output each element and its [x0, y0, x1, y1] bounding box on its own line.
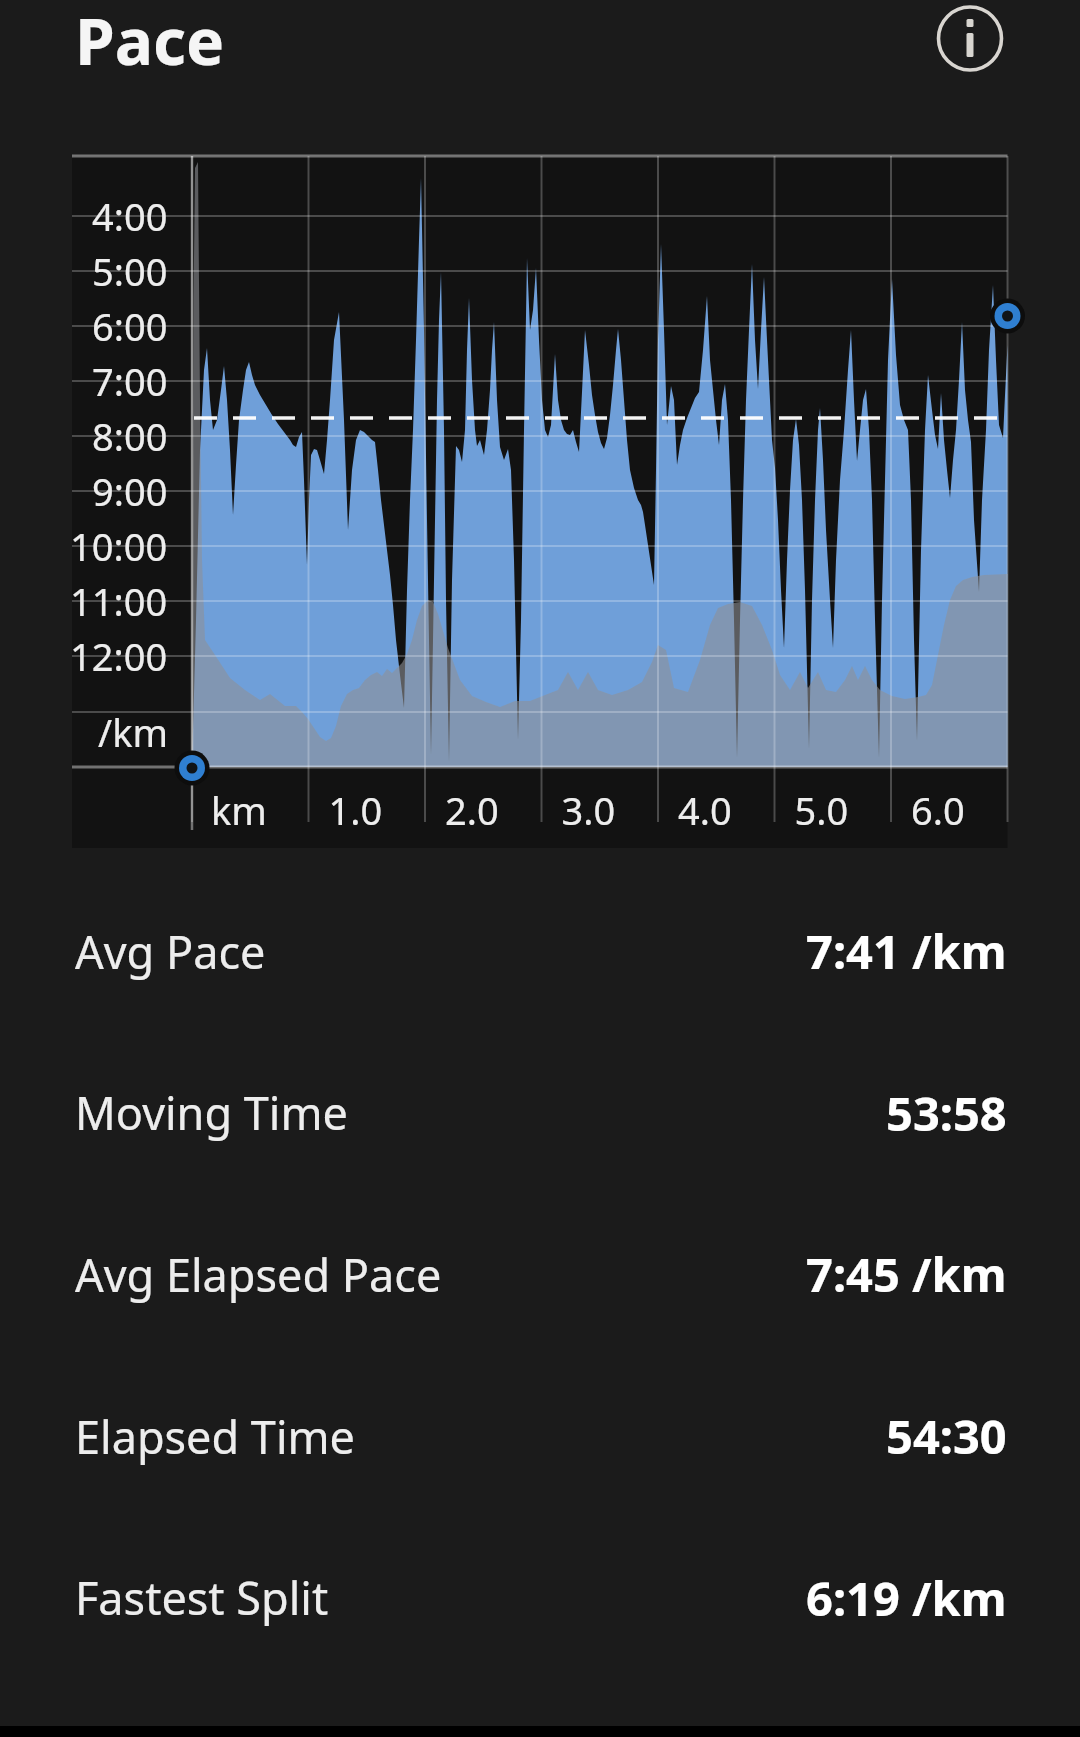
button[interactable] [936, 4, 1004, 72]
